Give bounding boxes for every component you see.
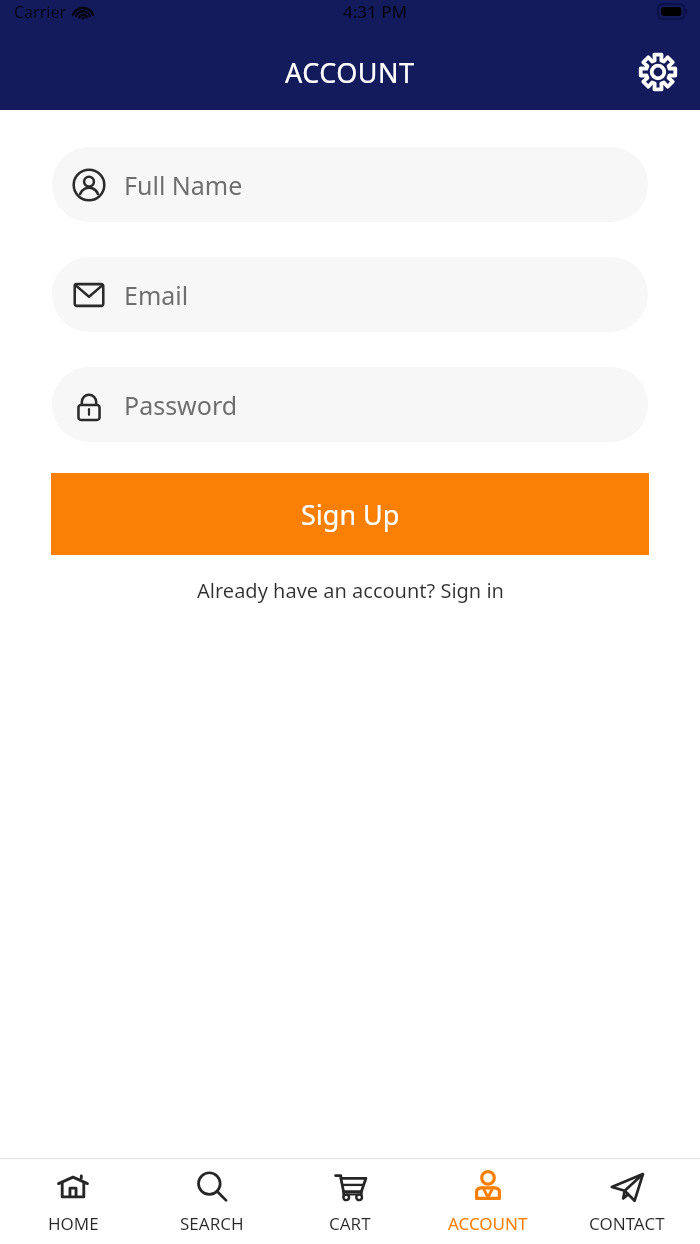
button[interactable]: CART — [285, 1162, 415, 1241]
button[interactable]: Full Name — [52, 147, 648, 222]
button[interactable]: SEARCH — [147, 1162, 277, 1241]
staticText: CONTACT — [589, 1212, 665, 1235]
staticText: Email — [124, 278, 189, 312]
staticText: SEARCH — [180, 1212, 244, 1235]
staticText: Sign Up — [301, 496, 400, 533]
staticText: Full Name — [124, 168, 243, 202]
button[interactable]: Sign Up — [51, 473, 649, 555]
staticText: Password — [124, 388, 238, 422]
button[interactable]: ACCOUNT — [423, 1162, 553, 1241]
button[interactable]: HOME — [8, 1162, 138, 1241]
button[interactable]: Password — [52, 367, 648, 442]
staticText: ACCOUNT — [448, 1212, 528, 1235]
button[interactable]: CONTACT — [562, 1162, 692, 1241]
button[interactable]: Already have an account? Sign in — [0, 577, 700, 604]
staticText: ACCOUNT — [285, 54, 415, 91]
staticText: Carrier — [14, 1, 67, 23]
button[interactable]: Email — [52, 257, 648, 332]
staticText: CART — [329, 1212, 371, 1235]
staticText: Already have an account? Sign in — [197, 577, 504, 604]
staticText: 4:31 PM — [343, 0, 408, 23]
button[interactable]: Settings — [634, 48, 682, 96]
staticText: HOME — [48, 1212, 99, 1235]
